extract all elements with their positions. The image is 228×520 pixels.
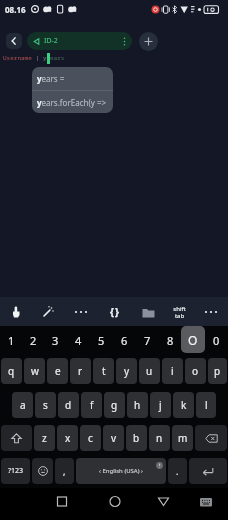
staticText: t xyxy=(102,364,106,378)
button[interactable]: a xyxy=(12,392,33,418)
button[interactable]: ID-2 xyxy=(27,32,132,50)
button[interactable]: years = xyxy=(32,67,113,90)
button[interactable]: 7 xyxy=(136,326,159,354)
button[interactable] xyxy=(32,458,53,484)
staticText: l xyxy=(205,398,208,412)
staticText: 5 xyxy=(98,333,105,348)
button[interactable] xyxy=(182,326,205,354)
button[interactable] xyxy=(40,304,56,320)
button[interactable] xyxy=(139,32,158,51)
button[interactable] xyxy=(152,488,228,520)
button[interactable] xyxy=(6,33,22,49)
staticText: Username xyxy=(3,54,32,62)
staticText: p xyxy=(214,364,221,378)
button[interactable] xyxy=(0,488,76,520)
button[interactable] xyxy=(76,488,152,520)
button[interactable]: j xyxy=(150,392,171,418)
button[interactable] xyxy=(189,458,227,484)
button[interactable]: years.forEach(y => xyxy=(32,91,113,113)
staticText: 6 xyxy=(121,333,128,348)
button[interactable]: 4 xyxy=(67,326,90,354)
button[interactable]: f xyxy=(81,392,102,418)
staticText: k xyxy=(181,398,187,412)
staticText: ears xyxy=(50,54,65,62)
button[interactable]: , xyxy=(55,458,74,484)
staticText: e xyxy=(55,364,61,378)
staticText: m xyxy=(178,431,188,445)
button[interactable]: c xyxy=(80,425,101,451)
button[interactable]: r xyxy=(70,358,91,384)
button[interactable]: n xyxy=(149,425,170,451)
button[interactable]: y xyxy=(116,358,137,384)
staticText: ?123 xyxy=(8,466,24,476)
button[interactable]: m xyxy=(172,425,193,451)
button[interactable] xyxy=(202,303,220,321)
button[interactable]: u xyxy=(139,358,160,384)
button[interactable] xyxy=(139,303,157,321)
button[interactable]: d xyxy=(58,392,79,418)
button[interactable]: x xyxy=(57,425,78,451)
button[interactable]: e xyxy=(47,358,68,384)
button[interactable]: 3 xyxy=(44,326,67,354)
staticText: 4 xyxy=(75,333,82,348)
staticText: w xyxy=(31,364,39,378)
staticText: 0 xyxy=(213,333,220,348)
button[interactable]: ?123 xyxy=(1,458,30,484)
button[interactable] xyxy=(8,304,24,320)
staticText: d xyxy=(65,398,72,412)
staticText: q xyxy=(8,364,15,378)
staticText: j xyxy=(159,398,162,412)
staticText: , xyxy=(63,465,66,477)
button[interactable]: g xyxy=(104,392,125,418)
button[interactable]: . xyxy=(168,458,187,484)
button[interactable]: {} xyxy=(106,303,124,321)
button[interactable]: z xyxy=(34,425,55,451)
button[interactable]: t xyxy=(93,358,114,384)
staticText: y xyxy=(124,364,130,378)
staticText: years = xyxy=(37,73,65,84)
button[interactable]: 8 xyxy=(159,326,182,354)
staticText: 3 xyxy=(52,333,59,348)
staticText: n xyxy=(156,431,163,445)
button[interactable]: q xyxy=(1,358,22,384)
staticText: 8 xyxy=(167,333,174,348)
staticText: h xyxy=(134,398,141,412)
staticText: 2 xyxy=(30,333,37,348)
button[interactable]: 2 xyxy=(22,326,44,354)
staticText: i xyxy=(171,364,174,378)
button[interactable]: v xyxy=(103,425,124,451)
button[interactable]: 6 xyxy=(113,326,136,354)
button[interactable]: l xyxy=(196,392,216,418)
button[interactable]: p xyxy=(208,358,227,384)
button[interactable]: ‹ English (USA) › xyxy=(76,458,166,484)
button[interactable]: h xyxy=(127,392,148,418)
button[interactable]: o xyxy=(185,358,206,384)
staticText: 7 xyxy=(144,333,151,348)
button[interactable] xyxy=(195,425,227,451)
button[interactable]: 1 xyxy=(0,326,22,354)
staticText: y xyxy=(43,54,47,62)
staticText: z xyxy=(42,431,47,445)
staticText: g xyxy=(111,398,118,412)
staticText: ID-2 xyxy=(44,36,58,46)
button[interactable]: b xyxy=(126,425,147,451)
staticText: O xyxy=(188,332,198,348)
button[interactable]: shift tab xyxy=(173,300,186,324)
staticText: {} xyxy=(110,305,120,319)
staticText: a xyxy=(20,398,26,412)
button[interactable]: w xyxy=(24,358,45,384)
button[interactable]: k xyxy=(173,392,194,418)
staticText: b xyxy=(133,431,140,445)
staticText: | xyxy=(32,54,43,62)
button[interactable]: i xyxy=(162,358,183,384)
button[interactable] xyxy=(72,303,90,321)
staticText: shift tab xyxy=(173,305,186,320)
button[interactable]: 5 xyxy=(90,326,113,354)
staticText: ‹ English (USA) › xyxy=(99,467,143,475)
staticText: years.forEach(y => xyxy=(37,97,107,108)
staticText: f xyxy=(90,398,94,412)
staticText: c xyxy=(88,431,93,445)
button[interactable]: 0 xyxy=(205,326,228,354)
button[interactable] xyxy=(1,425,32,451)
button[interactable]: s xyxy=(35,392,56,418)
